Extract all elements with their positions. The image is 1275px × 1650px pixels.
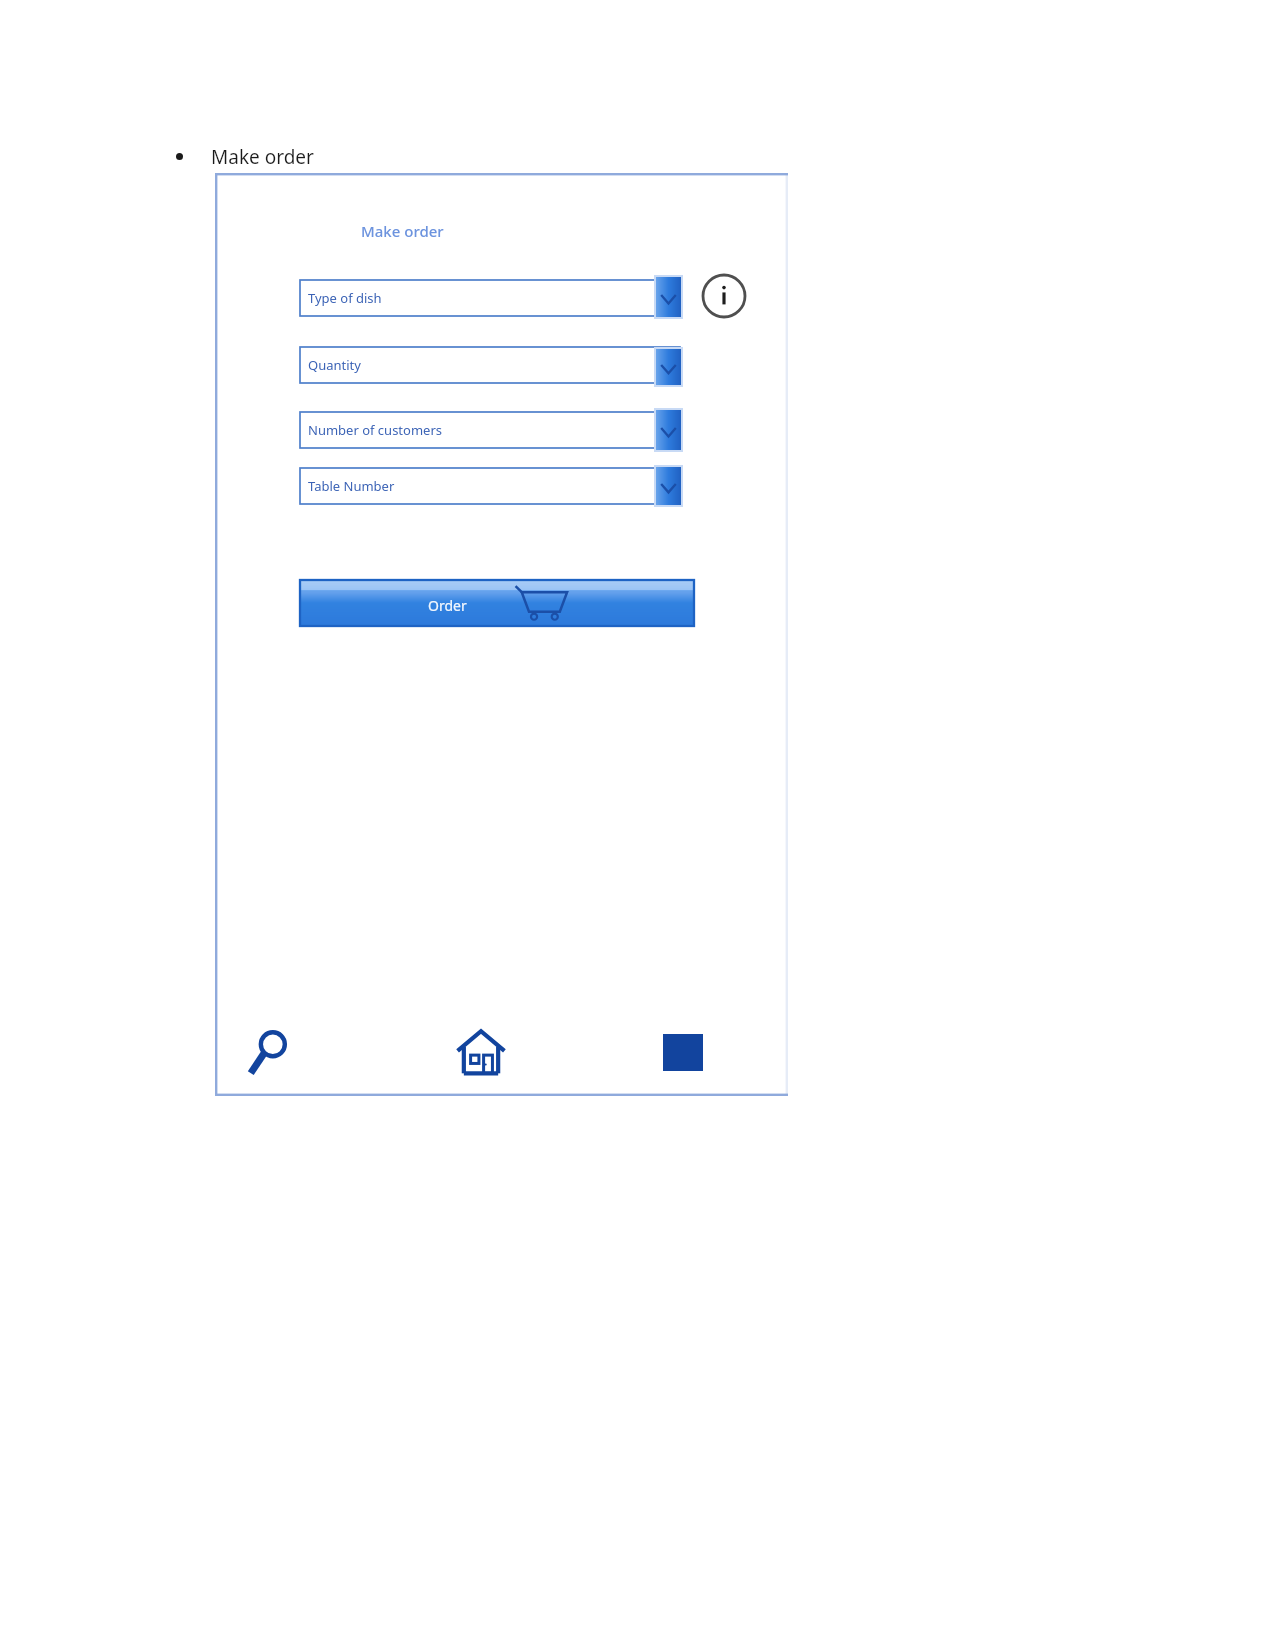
button[interactable]: Quantity [300, 341, 686, 389]
button[interactable]: Order [300, 580, 694, 626]
staticText: Table Number [308, 477, 395, 495]
button[interactable]: Home [447, 1018, 515, 1086]
button[interactable]: Search [235, 1018, 303, 1086]
staticText: Quantity [308, 356, 361, 374]
staticText: Make order [211, 144, 314, 170]
staticText: Type of dish [308, 289, 382, 307]
button[interactable]: Orders [649, 1018, 717, 1086]
staticText: Make order [361, 221, 444, 241]
staticText: Number of customers [308, 421, 443, 439]
button[interactable]: Type of dish [300, 274, 686, 322]
button[interactable]: Table Number [300, 462, 686, 510]
staticText: Order [428, 596, 467, 615]
button[interactable]: Information [699, 271, 749, 321]
button[interactable]: Number of customers [300, 406, 686, 454]
